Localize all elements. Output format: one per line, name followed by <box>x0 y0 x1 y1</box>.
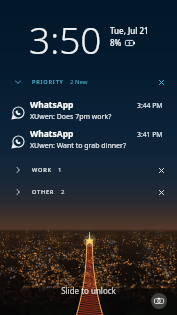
button[interactable]: Dismiss OTHER notifications <box>154 185 168 199</box>
staticText: Slide to unlock <box>61 285 116 296</box>
button[interactable]: WhatsApp <box>0 131 177 153</box>
button[interactable]: Dismiss WORK notifications <box>154 163 168 177</box>
staticText: Tue, Jul 21 <box>110 25 149 36</box>
button[interactable]: PRIORITY <box>0 75 177 89</box>
staticText: OTHER <box>32 188 55 196</box>
staticText: 3:44 PM <box>137 101 163 110</box>
staticText: XUwen: Does 7pm work? <box>30 112 112 121</box>
staticText: WhatsApp <box>30 128 74 140</box>
button[interactable]: OTHER <box>0 185 177 199</box>
button[interactable]: WORK <box>0 163 177 177</box>
staticText: 3:41 PM <box>137 130 163 139</box>
staticText: 1 <box>58 166 62 174</box>
staticText: XUwen: Want to grab dinner? <box>30 141 126 150</box>
staticText: WhatsApp <box>30 99 74 111</box>
staticText: 8% <box>110 37 122 48</box>
button[interactable]: Open camera <box>151 293 167 309</box>
staticText: 3:50 <box>29 14 102 64</box>
button[interactable]: Dismiss PRIORITY notifications <box>154 75 168 89</box>
staticText: 2 <box>61 188 65 196</box>
staticText: PRIORITY <box>32 78 64 86</box>
staticText: 2 New <box>70 78 88 86</box>
button[interactable]: WhatsApp <box>0 102 177 124</box>
staticText: WORK <box>32 166 52 174</box>
